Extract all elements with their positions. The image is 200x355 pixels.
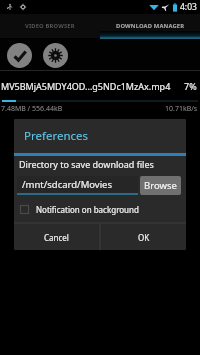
button[interactable]: OK (101, 224, 186, 250)
button[interactable]: Notification on background (14, 201, 186, 217)
staticText: VIDEO BROWSER (25, 22, 75, 30)
staticText: 4:03 (180, 1, 197, 13)
button[interactable]: Cancel (14, 224, 99, 250)
staticText: Directory to save download files (19, 158, 154, 170)
staticText: Cancel (44, 232, 69, 243)
staticText: OK (138, 232, 150, 243)
staticText: Browse (144, 179, 177, 192)
button[interactable]: VIDEO BROWSER (0, 14, 100, 38)
staticText: Notification on background (36, 204, 139, 215)
staticText: MV5BMjA5MDY4OD...g5NDc1MzAx.mp4 (1, 80, 184, 92)
staticText: Preferences (24, 128, 89, 144)
button[interactable]: Browse (140, 176, 181, 195)
button[interactable]: /mnt/sdcard/Movies (17, 176, 138, 195)
button[interactable]: DOWNLOAD MANAGER (100, 14, 200, 38)
staticText: 7.48MB / 556.44kB (1, 104, 63, 114)
button[interactable]: Select all (7, 43, 32, 68)
staticText: DOWNLOAD MANAGER (116, 22, 185, 30)
staticText: 7% (184, 80, 197, 92)
staticText: /mnt/sdcard/Movies (22, 178, 113, 191)
button[interactable]: Settings (43, 43, 68, 68)
staticText: 10.71kB/s (165, 104, 198, 114)
